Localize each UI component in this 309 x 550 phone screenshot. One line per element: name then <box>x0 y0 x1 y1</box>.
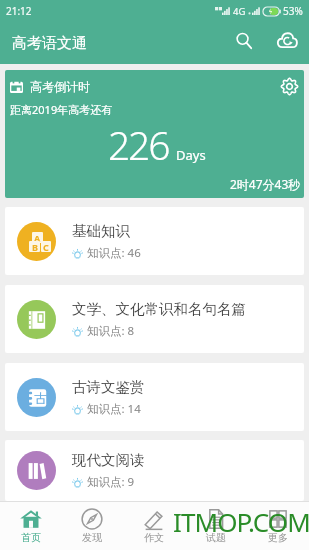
staticText: 更多 <box>268 531 288 544</box>
button[interactable]: 作文 <box>123 502 185 550</box>
staticText: 21:12 <box>6 4 32 18</box>
button[interactable]: 发现 <box>61 502 123 550</box>
staticText: 4G <box>233 5 246 18</box>
staticText: 基础知识 <box>72 222 130 240</box>
button[interactable]: 文学、文化常识和名句名篇 <box>5 285 304 353</box>
button[interactable]: 更多 <box>247 502 309 550</box>
staticText: 53% <box>283 4 303 18</box>
button[interactable]: A <box>5 207 304 275</box>
staticText: A <box>34 232 41 243</box>
staticText: 知识点: 46 <box>87 245 141 261</box>
button[interactable]: Sync <box>265 20 309 62</box>
button[interactable]: 试题 <box>185 502 247 550</box>
staticText: 知识点: 14 <box>87 401 141 417</box>
staticText: 知识点: 9 <box>87 474 135 490</box>
staticText: 作文 <box>144 531 164 544</box>
button[interactable]: Search <box>223 20 265 62</box>
staticText: 古 <box>34 390 47 406</box>
staticText: 发现 <box>82 531 102 544</box>
button[interactable]: 现代文阅读 <box>5 440 304 501</box>
staticText: 试题 <box>206 531 226 544</box>
staticText: 首页 <box>21 531 41 544</box>
staticText: 高考语文通 <box>12 34 87 53</box>
staticText: 知识点: 8 <box>87 323 135 339</box>
staticText: 文学、文化常识和名句名篇 <box>72 300 246 318</box>
staticText: C <box>43 241 49 252</box>
staticText: 现代文阅读 <box>72 451 145 469</box>
button[interactable]: 古 <box>5 363 304 431</box>
staticText: 226 <box>108 118 169 171</box>
staticText: 古诗文鉴赏 <box>72 378 145 396</box>
staticText: 距离2019年高考还有 <box>10 102 113 117</box>
staticText: B <box>32 241 38 252</box>
button[interactable]: 高考倒计时 <box>5 70 304 198</box>
button[interactable]: Settings <box>272 70 304 103</box>
button[interactable]: 首页 <box>0 502 61 550</box>
staticText: 2时47分43秒 <box>230 176 301 192</box>
staticText: 高考倒计时 <box>30 79 90 94</box>
staticText: ITMOP.COM <box>173 504 309 539</box>
staticText: Days <box>176 146 206 164</box>
